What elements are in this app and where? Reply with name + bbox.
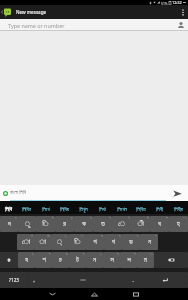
staticText: ু [25,221,30,227]
staticText: ৃ [64,234,67,237]
staticText: ্ [57,239,62,245]
staticText: থ [109,216,111,219]
button[interactable]: স [103,252,120,268]
button[interactable]: Recent apps [123,288,149,300]
staticText: Type name or number [8,22,65,29]
staticText: ো [22,239,30,245]
button[interactable]: লিখুন [74,205,93,214]
staticText: ষ [117,252,119,255]
staticText: ল [134,252,136,255]
staticText: গ [112,239,115,245]
staticText: ব [158,221,161,227]
button[interactable]: দ [0,216,18,232]
staticText: New message [16,9,47,15]
staticText: ভ [166,216,168,219]
button[interactable]: ে [112,216,131,232]
button[interactable]: র [55,216,74,232]
button[interactable]: ল [120,252,137,268]
staticText: ধ [15,216,17,219]
staticText: ল [127,257,131,263]
button[interactable]: গ [104,234,122,250]
staticText: ঙ [100,252,102,255]
staticText: ম [144,257,147,263]
staticText: ি [42,221,49,227]
staticText: ণ [155,234,157,237]
button[interactable]: ব [150,216,169,232]
staticText: ঃ [183,216,187,219]
button[interactable]: লিখীয় [169,205,188,214]
button[interactable]: লিখী [150,205,169,214]
staticText: ফ [101,234,103,237]
staticText: লিখী [156,207,163,212]
staticText: ন [93,257,96,263]
button[interactable]: ী [131,216,150,232]
button[interactable]: Home [81,288,107,300]
button[interactable]: লিখিয় [55,205,74,214]
staticText: ড় [71,216,73,219]
button[interactable]: লিখেন [112,205,131,214]
button[interactable]: চ [52,252,69,268]
button[interactable]: Hide keyboard [39,288,65,300]
staticText: . [132,277,134,283]
staticText: বাংলা লিখি [10,189,26,196]
staticText: ষ [49,252,51,255]
button[interactable]: Backspace [154,252,188,268]
staticText: লিখিয় [60,207,69,212]
button[interactable]: ি [36,216,55,232]
button[interactable]: প [86,234,104,250]
staticText: লিখা [99,207,106,212]
staticText: স [110,257,114,263]
staticText: ড [129,239,133,245]
button[interactable]: Space [40,272,125,288]
button[interactable]: া [34,234,51,250]
staticText: ঘ [119,234,121,237]
staticText: লিখীয় [174,207,183,212]
button[interactable]: New message [0,5,47,19]
button[interactable]: . [125,272,141,288]
button[interactable]: ্ [51,234,68,250]
button[interactable]: ক [74,216,93,232]
button[interactable]: ন [140,234,158,250]
button[interactable]: লিখা [93,205,112,214]
staticText: ং [149,252,153,255]
staticText: ত [101,221,105,227]
button[interactable]: ি [68,234,86,250]
button[interactable]: শ [35,252,52,268]
button[interactable]: More options [177,5,188,19]
staticText: া [39,239,46,245]
button[interactable]: ম [137,252,154,268]
button[interactable]: লিখির [17,205,36,214]
button[interactable]: ড [122,234,140,250]
staticText: 51% [161,1,168,5]
staticText: য় [32,252,34,255]
staticText: ৈ [81,234,85,237]
staticText: ক [82,221,86,227]
button[interactable]: Send [166,185,188,201]
button[interactable]: য [18,252,35,268]
staticText: ি [74,239,81,245]
button[interactable]: Enter [141,272,188,288]
staticText: আ [47,234,50,237]
button[interactable]: ?123 [0,272,28,288]
staticText: ন [148,239,151,245]
button[interactable]: Add recipient [174,19,188,31]
button[interactable]: হ [169,216,188,232]
button[interactable]: ন [86,252,103,268]
button[interactable]: লিখিত [131,205,150,214]
button[interactable]: লিখি [0,205,17,214]
staticText: র [63,221,66,227]
staticText: লিখির [22,207,31,212]
staticText: খ [90,216,92,219]
button[interactable]: ত [93,216,112,232]
staticText: , [33,277,35,283]
button[interactable]: Shift [0,252,18,268]
button[interactable]: ু [18,216,36,232]
staticText: হ [177,221,180,227]
button[interactable]: লিখে [36,205,55,214]
button[interactable]: , [28,272,40,288]
button[interactable]: ো [17,234,34,250]
staticText: শ [42,257,46,263]
button[interactable]: Add attachment [0,185,10,201]
staticText: দ [8,221,11,227]
button[interactable]: ট [69,252,86,268]
